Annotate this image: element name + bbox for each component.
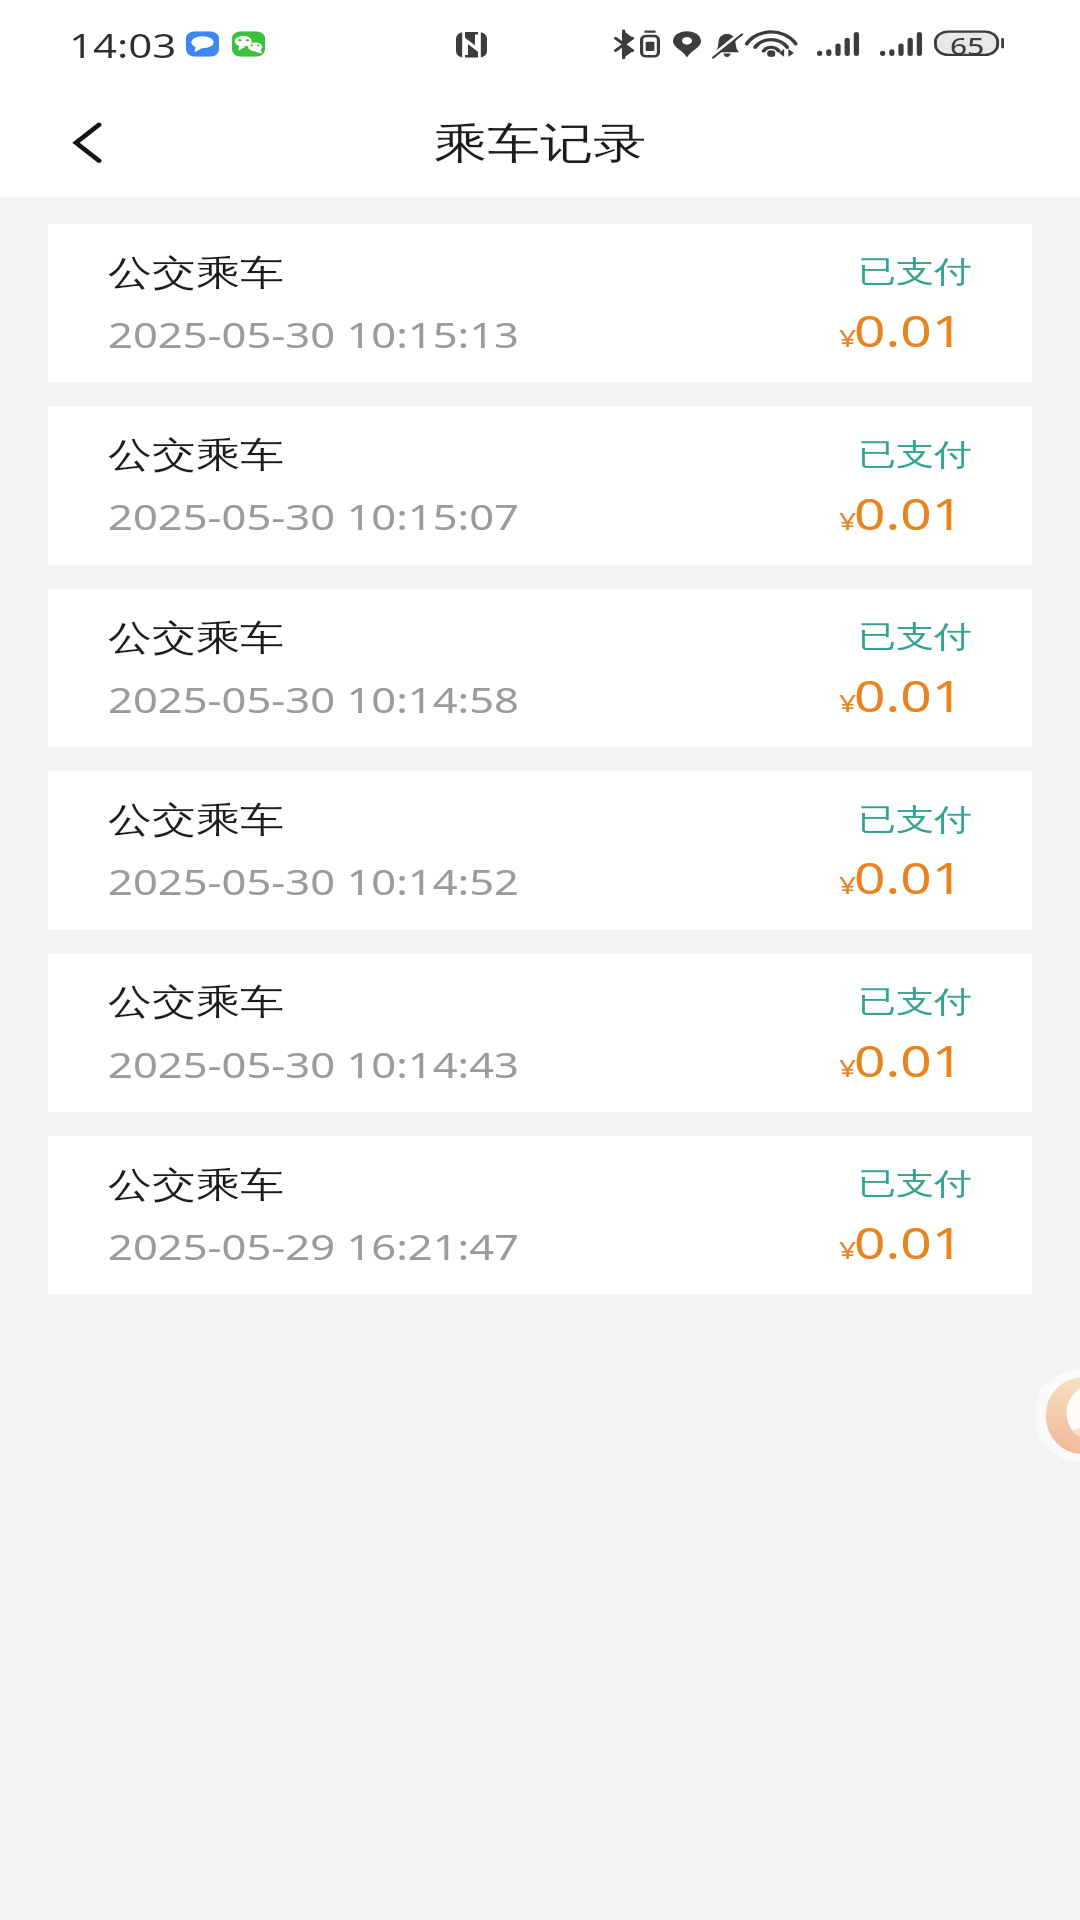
staticText: 公交乘车 [108, 981, 284, 1025]
staticText: ¥ [839, 686, 857, 719]
staticText: 65 [950, 30, 985, 55]
staticText: 2025-05-30 10:14:52 [108, 858, 519, 905]
staticText: 已支付 [858, 982, 972, 1021]
staticText: 0.01 [854, 1212, 964, 1272]
staticText: 0.01 [854, 665, 964, 725]
staticText: 公交乘车 [108, 798, 284, 842]
staticText: ¥ [839, 869, 857, 902]
staticText: 公交乘车 [108, 434, 284, 478]
staticText: 公交乘车 [108, 1163, 284, 1207]
staticText: 乘车记录 [434, 117, 646, 170]
button[interactable]: 公交乘车 [48, 1136, 1032, 1294]
staticText: 已支付 [858, 253, 972, 291]
staticText: 公交乘车 [108, 251, 284, 295]
staticText: 14:03 [69, 22, 177, 67]
button[interactable]: 公交乘车 [48, 589, 1032, 747]
button[interactable]: Assistant [1036, 1370, 1080, 1462]
button[interactable]: 公交乘车 [48, 771, 1032, 930]
button[interactable]: 公交乘车 [48, 224, 1032, 382]
staticText: ¥ [839, 504, 857, 537]
staticText: 已支付 [858, 435, 972, 474]
button[interactable]: Back [44, 98, 130, 188]
staticText: ¥ [839, 1234, 857, 1266]
staticText: 已支付 [858, 800, 972, 838]
staticText: 2025-05-30 10:14:58 [108, 675, 519, 722]
staticText: 0.01 [854, 300, 964, 360]
staticText: 0.01 [854, 847, 964, 907]
button[interactable]: 公交乘车 [48, 954, 1032, 1112]
staticText: 2025-05-30 10:15:13 [108, 310, 519, 358]
staticText: 2025-05-30 10:15:07 [108, 493, 519, 540]
button[interactable]: 公交乘车 [48, 406, 1032, 565]
staticText: 0.01 [854, 482, 964, 542]
staticText: 已支付 [858, 1165, 972, 1203]
staticText: 2025-05-30 10:14:43 [108, 1040, 519, 1087]
staticText: ¥ [839, 1051, 857, 1084]
staticText: 已支付 [858, 618, 972, 656]
staticText: 2025-05-29 16:21:47 [108, 1222, 519, 1270]
staticText: 公交乘车 [108, 616, 284, 660]
staticText: ¥ [839, 322, 857, 354]
staticText: 0.01 [854, 1030, 964, 1090]
